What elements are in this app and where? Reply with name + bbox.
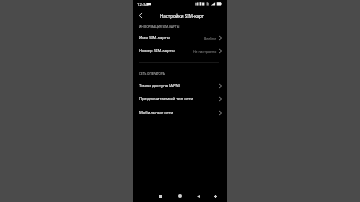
button[interactable]: Home [175,191,185,201]
staticText: Номер SIM-карты [139,48,175,54]
button[interactable]: Предпочитаемый тип сети [133,92,227,106]
button[interactable]: Имя SIM-карты [133,31,227,45]
staticText: Мобильные сети [139,110,174,116]
button[interactable]: Мобильные сети [133,106,227,120]
staticText: СЕТЬ ОПЕРАТОРА [139,72,165,76]
staticText: Beeline [204,36,217,41]
button[interactable]: Back [193,191,203,201]
staticText: 12:34 [137,2,148,8]
staticText: Настройки SIM-карт [160,13,204,19]
staticText: ИНФОРМАЦИЯ SIM-КАРТЫ [139,25,180,29]
staticText: Не настроено [193,49,217,54]
button[interactable]: Recent apps [155,191,165,201]
button[interactable]: Точки доступа (APN) [133,79,227,93]
button[interactable]: Номер SIM-карты [133,44,227,58]
staticText: Точки доступа (APN) [139,83,181,89]
button[interactable]: Hide keyboard [210,191,220,201]
staticText: Предпочитаемый тип сети [139,96,194,102]
button[interactable]: Back [136,11,145,20]
staticText: Имя SIM-карты [139,35,170,41]
